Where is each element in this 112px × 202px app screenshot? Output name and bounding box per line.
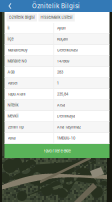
button[interactable]: Öznitelik Bilgisi bbox=[6, 13, 37, 21]
staticText: Mahalle No bbox=[7, 59, 26, 63]
staticText: Nitelik bbox=[7, 103, 18, 107]
staticText: Koçarlı bbox=[57, 37, 68, 41]
staticText: Ana Taşınmaz bbox=[57, 125, 81, 129]
staticText: Mahalle/Köy bbox=[7, 48, 27, 52]
staticText: Hisse/Malik Listesi bbox=[41, 15, 73, 20]
staticText: Parsel bbox=[7, 81, 17, 85]
staticText: Demirkaya bbox=[57, 114, 75, 118]
button[interactable]: Favorilere ekle bbox=[4, 144, 109, 158]
staticText: 1 bbox=[57, 81, 59, 85]
button[interactable]: Back bbox=[0, 0, 16, 12]
staticText: Favorilere ekle bbox=[43, 148, 70, 154]
staticText: 1Mbulu-10 bbox=[57, 136, 75, 140]
staticText: 235,84 bbox=[57, 92, 68, 96]
staticText: Öznitelik Bilgisi bbox=[32, 2, 80, 10]
staticText: İlçe bbox=[7, 37, 13, 41]
staticText: Zemin Tip bbox=[7, 125, 23, 129]
staticText: 147869 bbox=[57, 59, 69, 63]
staticText: Tapu Alanı bbox=[7, 92, 25, 96]
staticText: İl bbox=[7, 26, 9, 30]
staticText: Öznitelik Bilgisi bbox=[9, 15, 35, 20]
staticText: Ada bbox=[7, 70, 14, 74]
staticText: 283 bbox=[57, 70, 63, 74]
staticText: Arsa bbox=[57, 103, 65, 107]
staticText: Aydın bbox=[57, 26, 66, 30]
staticText: Pafta bbox=[7, 136, 15, 140]
staticText: Gerenkovası bbox=[57, 48, 78, 52]
staticText: Mevkii bbox=[7, 114, 18, 118]
button[interactable]: Hisse/Malik Listesi bbox=[38, 13, 75, 21]
